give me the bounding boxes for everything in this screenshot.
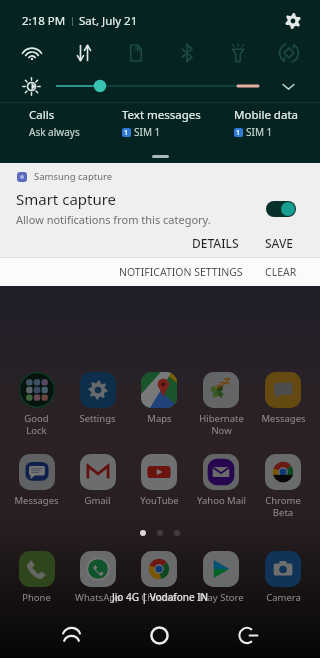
button[interactable]: Mobile data [234, 107, 302, 139]
button[interactable]: YouTube [128, 454, 190, 507]
button[interactable]: Recents [27, 616, 115, 654]
button[interactable]: NOTIFICATION SETTINGS [115, 260, 247, 284]
button[interactable]: DETAILS [186, 231, 245, 255]
button[interactable]: Camera [252, 551, 314, 604]
staticText: Camera [266, 591, 301, 604]
button[interactable]: Settings [67, 372, 128, 425]
button[interactable]: Yahoo Mail [190, 454, 252, 507]
staticText: Text messages [122, 107, 201, 123]
button[interactable]: Mobile data [58, 38, 110, 68]
button[interactable]: Text messages [122, 107, 205, 139]
button[interactable]: Flashlight [212, 38, 263, 68]
staticText: Messages [14, 494, 59, 507]
button[interactable]: Bluetooth [161, 38, 212, 68]
staticText: Allow notifications from this category. [16, 212, 211, 227]
staticText: CLEAR [265, 265, 297, 279]
staticText: NOTIFICATION SETTINGS [119, 265, 243, 279]
staticText: Phone [22, 591, 51, 604]
staticText: Calls [29, 107, 55, 123]
staticText: Ask always [29, 125, 80, 139]
button[interactable]: WhatsApp [67, 551, 128, 604]
button[interactable]: Calls [29, 107, 84, 139]
staticText: WhatsApp [75, 591, 121, 604]
button[interactable]: Play Store [190, 551, 252, 604]
staticText: SAVE [265, 235, 294, 251]
staticText: Chrome Beta [265, 494, 301, 519]
button[interactable]: Messages [252, 372, 314, 425]
staticText: Hibernate Now [199, 412, 244, 437]
button[interactable]: Auto rotate [263, 38, 314, 68]
staticText: Settings [79, 412, 116, 425]
staticText: Mobile data [234, 107, 298, 123]
staticText: 1 [124, 128, 129, 137]
staticText: Yahoo Mail [197, 494, 246, 507]
staticText: Good Lock [24, 412, 49, 437]
button[interactable]: Expand quick settings [275, 73, 301, 99]
staticText: Play Store [199, 591, 244, 604]
button[interactable]: Home [115, 616, 204, 654]
staticText: Jio 4G | Vodafone IN [112, 590, 209, 604]
button[interactable]: Wi-Fi [6, 38, 58, 68]
button[interactable]: Good Lock [6, 372, 67, 437]
button[interactable]: CLEAR [261, 260, 301, 284]
staticText: Samsung capture [34, 170, 113, 183]
button[interactable]: Allow notifications [266, 201, 296, 217]
staticText: SIM 1 [246, 125, 273, 139]
button[interactable]: Back [204, 616, 293, 654]
staticText: SIM 1 [134, 125, 161, 139]
button[interactable]: SAVE [259, 231, 300, 255]
staticText: 2:18 PM [22, 13, 66, 29]
button[interactable]: Gmail [67, 454, 128, 507]
button[interactable]: Phone [6, 551, 67, 604]
staticText: Gmail [84, 494, 111, 507]
button[interactable]: Hibernate Now [190, 372, 252, 437]
button[interactable]: Maps [128, 372, 190, 425]
button[interactable]: Messages [6, 454, 67, 507]
staticText: 1 [236, 128, 241, 137]
button[interactable]: Settings [280, 8, 306, 34]
staticText: Smart capture [16, 189, 117, 209]
staticText: YouTube [140, 494, 179, 507]
staticText: Maps [147, 412, 172, 425]
button[interactable]: Chrome Beta [252, 454, 314, 519]
button[interactable]: Chrome [128, 551, 190, 604]
staticText: Sat, July 21 [79, 13, 138, 29]
staticText: Messages [261, 412, 306, 425]
button[interactable]: Brightness [18, 73, 44, 99]
staticText: Chrome [141, 591, 177, 604]
button[interactable]: NFC [110, 38, 161, 68]
staticText: DETAILS [192, 235, 239, 251]
